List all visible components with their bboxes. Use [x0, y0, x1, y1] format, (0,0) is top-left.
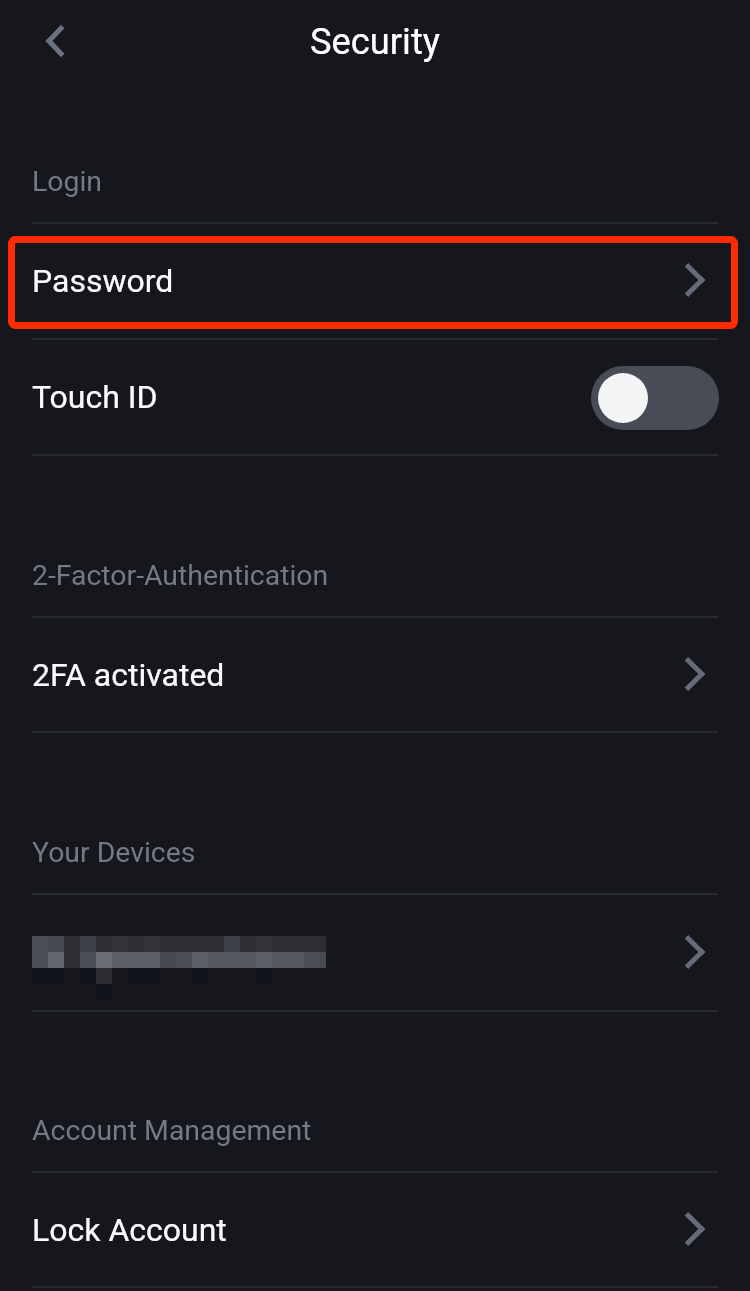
- button[interactable]: Back: [23, 9, 87, 73]
- button[interactable]: Device details: [0, 893, 750, 1010]
- staticText: Login: [32, 165, 103, 198]
- staticText: 2FA activated: [32, 656, 225, 694]
- staticText: Account Management: [32, 1114, 312, 1147]
- staticText: Lock Account: [32, 1211, 227, 1249]
- staticText: Security: [310, 20, 440, 63]
- staticText: 2-Factor-Authentication: [32, 559, 329, 592]
- button[interactable]: 2FA activated: [0, 616, 750, 731]
- button[interactable]: Touch ID: [0, 338, 750, 454]
- button[interactable]: Lock Account: [0, 1171, 750, 1286]
- staticText: Password: [32, 262, 174, 300]
- staticText: Touch ID: [32, 378, 158, 416]
- staticText: Your Devices: [32, 836, 196, 869]
- button[interactable]: Touch ID: [591, 366, 719, 430]
- button[interactable]: Password: [0, 222, 750, 338]
